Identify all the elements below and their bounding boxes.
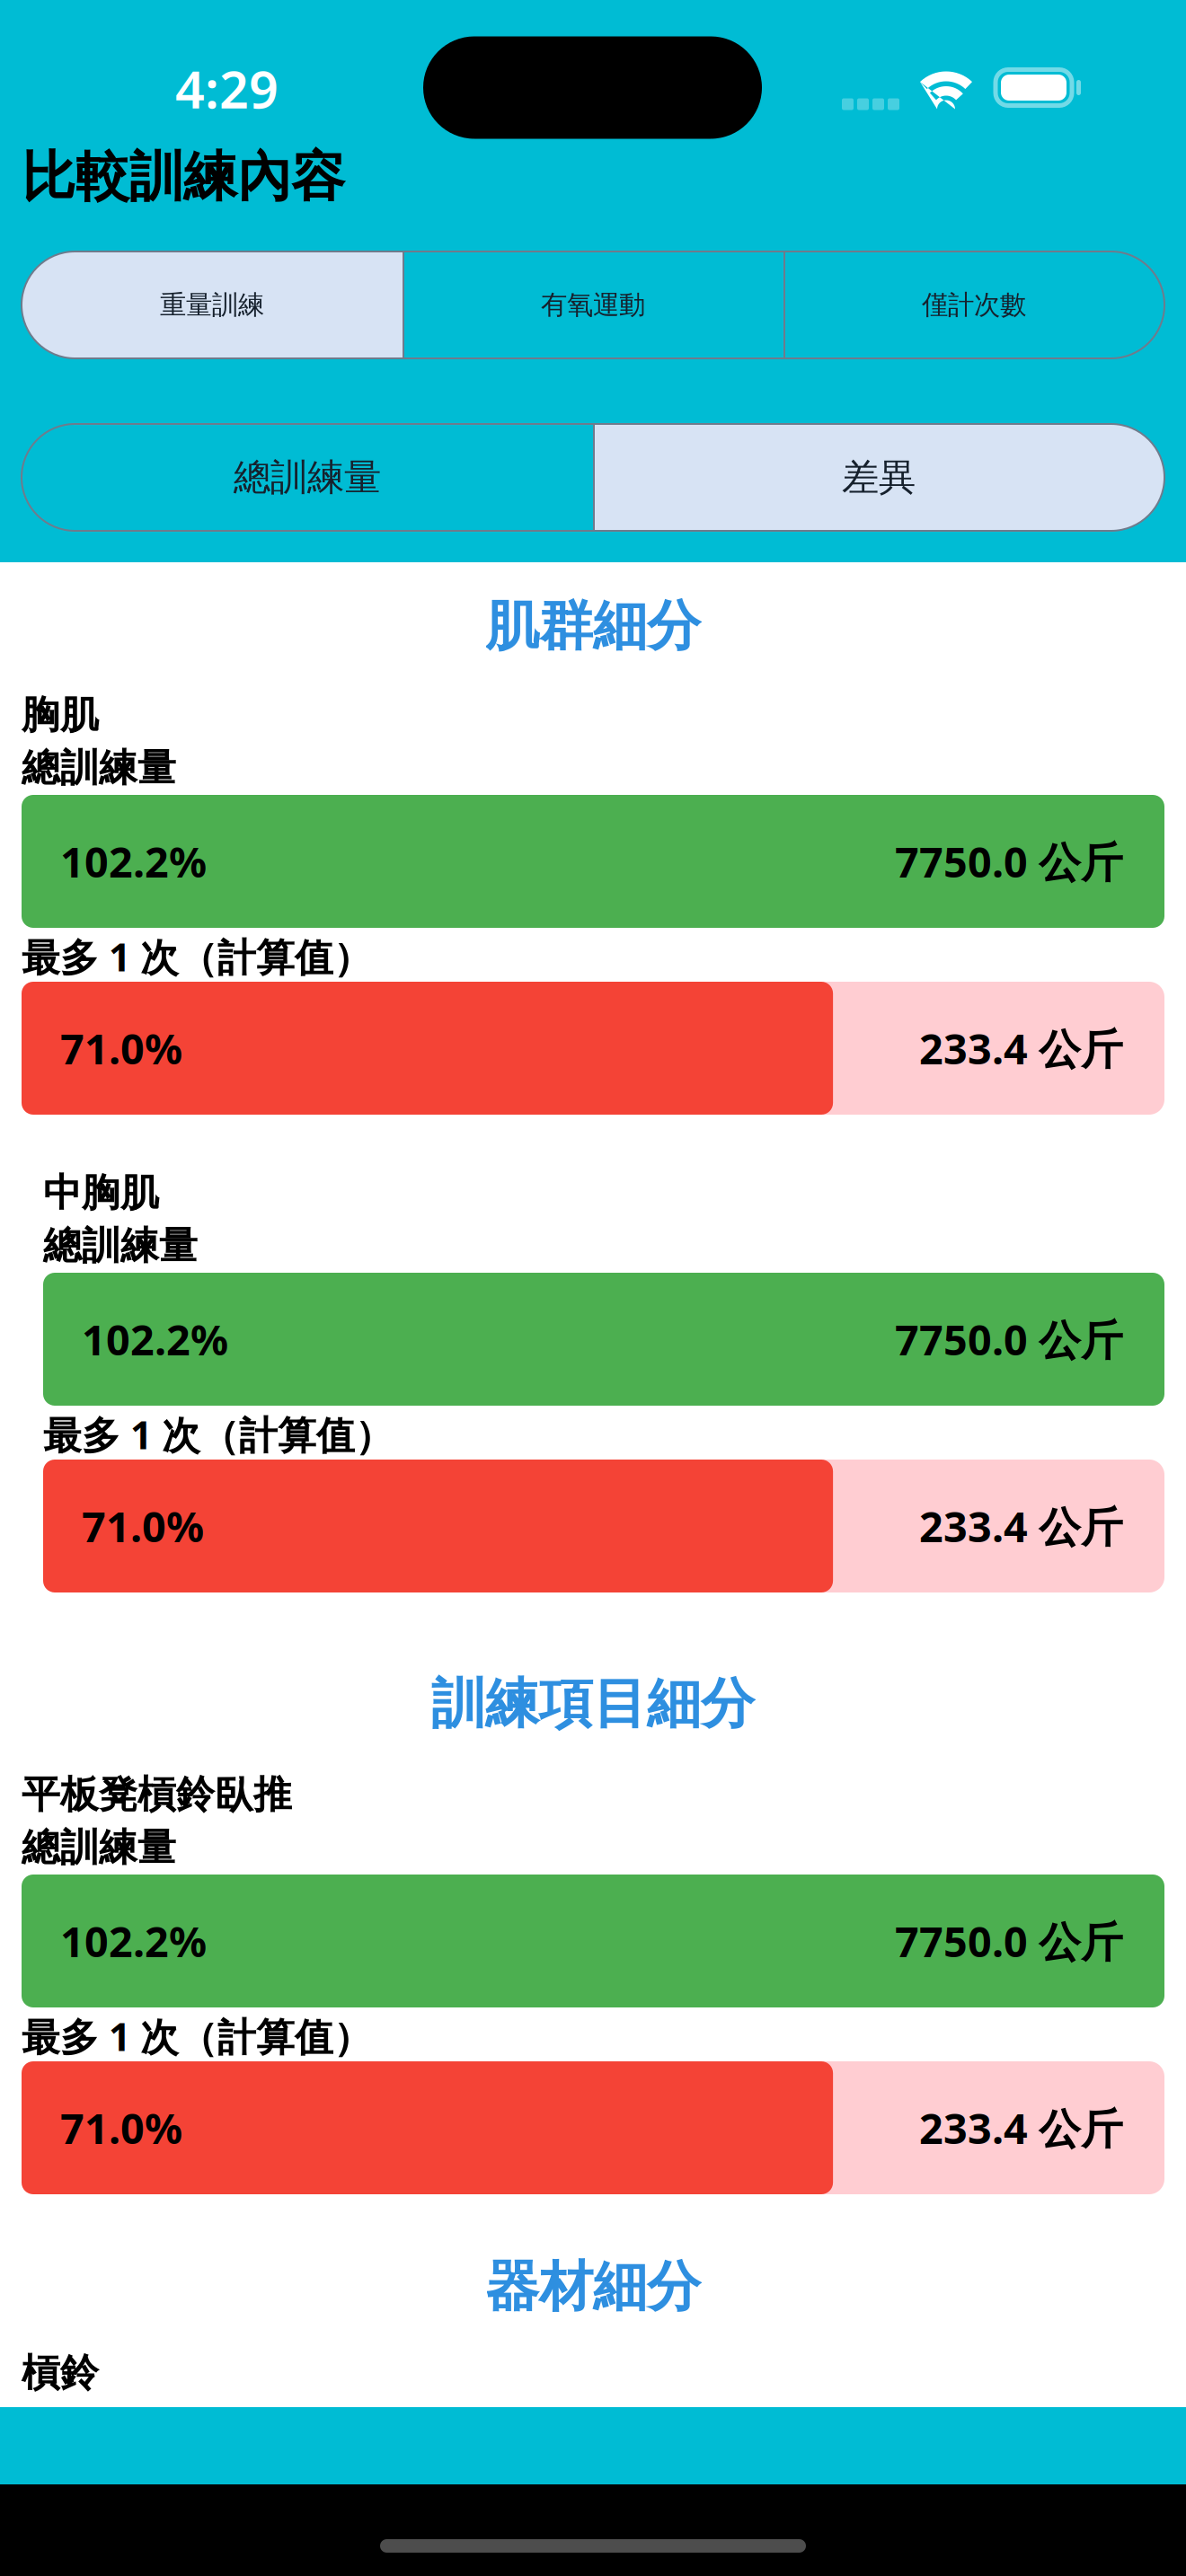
button[interactable]: 差異 (593, 424, 1164, 531)
staticText: 233.4 公斤 (919, 2100, 1123, 2156)
staticText: 71.0% (82, 1498, 204, 1554)
button[interactable]: 有氧運動 (403, 251, 783, 358)
staticText: 差異 (842, 455, 916, 500)
staticText: 233.4 公斤 (919, 1498, 1123, 1554)
staticText: 7750.0 公斤 (895, 1913, 1123, 1969)
staticText: 71.0% (60, 2100, 182, 2156)
staticText: 102.2% (60, 834, 207, 889)
staticText: 總訓練量 (22, 744, 176, 791)
staticText: 最多 1 次（計算值） (22, 931, 372, 982)
staticText: 最多 1 次（計算值） (43, 1409, 394, 1460)
staticText: 102.2% (60, 1913, 207, 1969)
staticText: 器材細分 (485, 2254, 701, 2320)
staticText: 233.4 公斤 (919, 1020, 1123, 1076)
staticText: 比較訓練內容 (22, 144, 345, 210)
staticText: 有氧運動 (541, 289, 645, 321)
staticText: 總訓練量 (234, 455, 381, 500)
staticText: 102.2% (82, 1311, 228, 1367)
button[interactable]: 總訓練量 (22, 424, 593, 531)
staticText: 總訓練量 (43, 1222, 198, 1269)
staticText: 7750.0 公斤 (895, 834, 1123, 889)
staticText: 平板凳槓鈴臥推 (22, 1771, 292, 1818)
staticText: 訓練項目細分 (431, 1671, 755, 1737)
staticText: 重量訓練 (160, 289, 264, 321)
staticText: 7750.0 公斤 (895, 1311, 1123, 1367)
button[interactable]: 僅計次數 (783, 251, 1164, 358)
staticText: 71.0% (60, 1020, 182, 1076)
staticText: 僅計次數 (922, 289, 1026, 321)
staticText: 總訓練量 (22, 1824, 176, 1871)
staticText: 中胸肌 (43, 1169, 159, 1216)
staticText: 槓鈴 (22, 2349, 99, 2397)
staticText: 4:29 (175, 54, 279, 123)
staticText: 肌群細分 (485, 593, 701, 659)
button[interactable]: 重量訓練 (22, 251, 403, 358)
staticText: 胸肌 (22, 691, 99, 738)
staticText: 最多 1 次（計算值） (22, 2011, 372, 2062)
